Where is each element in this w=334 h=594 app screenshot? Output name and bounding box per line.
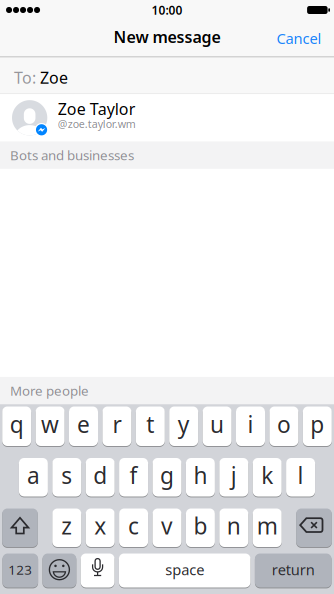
staticText: To: — [14, 67, 36, 88]
button[interactable]: Shift — [2, 508, 38, 547]
staticText: f — [130, 460, 138, 490]
staticText: e — [77, 409, 90, 439]
button[interactable]: 123 — [2, 553, 38, 587]
staticText: q — [10, 409, 24, 439]
button[interactable]: t — [136, 406, 165, 446]
staticText: c — [128, 511, 139, 541]
button[interactable]: Zoe Taylor — [0, 94, 334, 141]
button[interactable]: z — [52, 508, 81, 547]
button[interactable]: h — [186, 458, 215, 496]
button[interactable]: Dictate — [81, 553, 114, 587]
staticText: Zoe Taylor — [58, 98, 136, 119]
staticText: t — [146, 409, 154, 439]
button[interactable]: y — [169, 406, 198, 446]
staticText: s — [61, 460, 72, 490]
button[interactable]: x — [86, 508, 115, 547]
staticText: u — [210, 409, 224, 439]
staticText: o — [277, 409, 291, 439]
staticText: y — [178, 409, 190, 439]
staticText: Bots and businesses — [10, 146, 134, 164]
button[interactable]: Emoji — [42, 553, 76, 587]
staticText: l — [298, 460, 304, 490]
staticText: k — [261, 460, 273, 490]
staticText: @zoe.taylor.wm — [58, 117, 136, 131]
staticText: p — [310, 409, 324, 439]
button[interactable]: u — [203, 406, 232, 446]
staticText: return — [272, 560, 315, 579]
staticText: space — [165, 560, 204, 579]
button[interactable]: c — [119, 508, 148, 547]
staticText: v — [161, 511, 173, 541]
button[interactable]: p — [303, 406, 332, 446]
staticText: x — [94, 511, 106, 541]
staticText: 10:00 — [151, 2, 182, 18]
staticText: b — [193, 511, 207, 541]
button[interactable]: v — [152, 508, 181, 547]
button[interactable]: j — [219, 458, 248, 496]
staticText: h — [193, 460, 207, 490]
button[interactable]: b — [186, 508, 215, 547]
button[interactable]: Cancel — [276, 28, 334, 48]
staticText: g — [160, 460, 174, 490]
button[interactable]: g — [152, 458, 181, 496]
button[interactable]: space — [119, 553, 250, 587]
button[interactable]: Delete — [296, 508, 332, 547]
staticText: d — [93, 460, 107, 490]
staticText: m — [257, 511, 278, 541]
button[interactable]: a — [19, 458, 48, 496]
button[interactable]: i — [236, 406, 265, 446]
staticText: New message — [113, 26, 220, 47]
button[interactable]: w — [36, 406, 65, 446]
button[interactable]: f — [119, 458, 148, 496]
staticText: r — [112, 409, 121, 439]
staticText: n — [227, 511, 241, 541]
button[interactable]: r — [102, 406, 131, 446]
button[interactable]: q — [2, 406, 31, 446]
staticText: Zoe — [40, 67, 68, 88]
button[interactable]: s — [52, 458, 81, 496]
staticText: j — [231, 460, 237, 490]
button[interactable]: return — [255, 553, 331, 587]
staticText: Cancel — [276, 28, 321, 48]
staticText: z — [61, 511, 72, 541]
button[interactable]: m — [253, 508, 282, 547]
button[interactable]: e — [69, 406, 98, 446]
button[interactable]: d — [86, 458, 115, 496]
staticText: i — [247, 409, 253, 439]
button[interactable]: n — [219, 508, 248, 547]
staticText: More people — [10, 382, 89, 399]
button[interactable]: k — [253, 458, 282, 496]
button[interactable]: o — [269, 406, 298, 446]
staticText: a — [27, 460, 40, 490]
staticText: 123 — [8, 561, 32, 578]
button[interactable]: l — [286, 458, 315, 496]
staticText: w — [41, 409, 59, 439]
